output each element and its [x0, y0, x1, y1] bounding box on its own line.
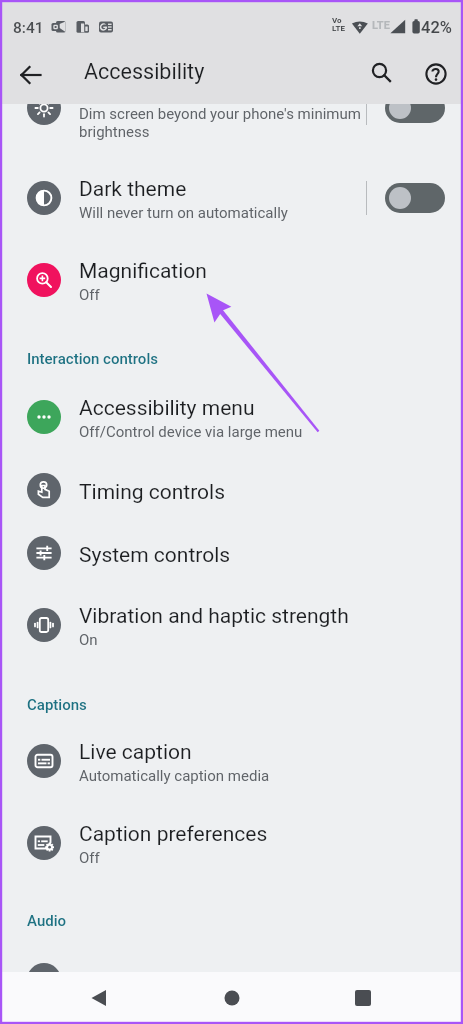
button[interactable]: Search [360, 52, 404, 96]
button[interactable]: Recents [334, 972, 392, 1024]
staticText: LTE [372, 19, 390, 32]
button[interactable]: System controls [0, 527, 463, 579]
button[interactable]: Audio [27, 912, 67, 930]
button[interactable]: Accessibility menu [0, 389, 463, 445]
staticText: Off [79, 286, 100, 304]
button[interactable]: Back [70, 972, 128, 1024]
staticText: System controls [79, 543, 231, 568]
button[interactable]: Toggle [385, 93, 445, 123]
staticText: Interaction controls [27, 350, 158, 368]
staticText: On [79, 631, 98, 649]
staticText: Off/Control device via large menu [79, 423, 303, 441]
staticText: Magnification [79, 259, 207, 284]
staticText: Live caption [79, 740, 192, 765]
staticText: Automatically caption media [79, 767, 270, 785]
staticText: Off [79, 849, 100, 867]
button[interactable]: Live caption [0, 733, 463, 789]
staticText: Vibration and haptic strength [79, 604, 349, 629]
staticText: Will never turn on automatically [79, 204, 288, 222]
staticText: Audio [27, 912, 67, 930]
button[interactable]: Vibration and haptic strength [0, 597, 463, 653]
button[interactable]: Audio adjustment [0, 954, 463, 1006]
button[interactable]: Caption preferences [0, 815, 463, 871]
button[interactable]: Home [203, 972, 261, 1024]
staticText: 42% [421, 18, 452, 37]
button[interactable]: Captions [27, 696, 87, 714]
button[interactable]: Timing controls [0, 464, 463, 516]
button[interactable]: Back [8, 52, 54, 98]
staticText: Vo LTE [332, 16, 345, 33]
button[interactable]: Toggle [385, 183, 445, 213]
button[interactable]: Magnification [0, 252, 463, 308]
button[interactable]: Help [414, 52, 458, 96]
button[interactable]: Dark theme [0, 170, 463, 226]
staticText: Dim screen beyond your phone's minimum [79, 105, 361, 123]
staticText: Accessibility [84, 59, 205, 84]
staticText: Caption preferences [79, 822, 268, 847]
staticText: brightness [79, 123, 150, 141]
staticText: Accessibility menu [79, 396, 255, 421]
staticText: Captions [27, 696, 87, 714]
staticText: Timing controls [79, 480, 226, 505]
staticText: Audio adjustment [79, 970, 244, 995]
button[interactable]: Interaction controls [27, 350, 158, 368]
staticText: Dark theme [79, 177, 187, 202]
staticText: 8:41 [13, 19, 44, 37]
